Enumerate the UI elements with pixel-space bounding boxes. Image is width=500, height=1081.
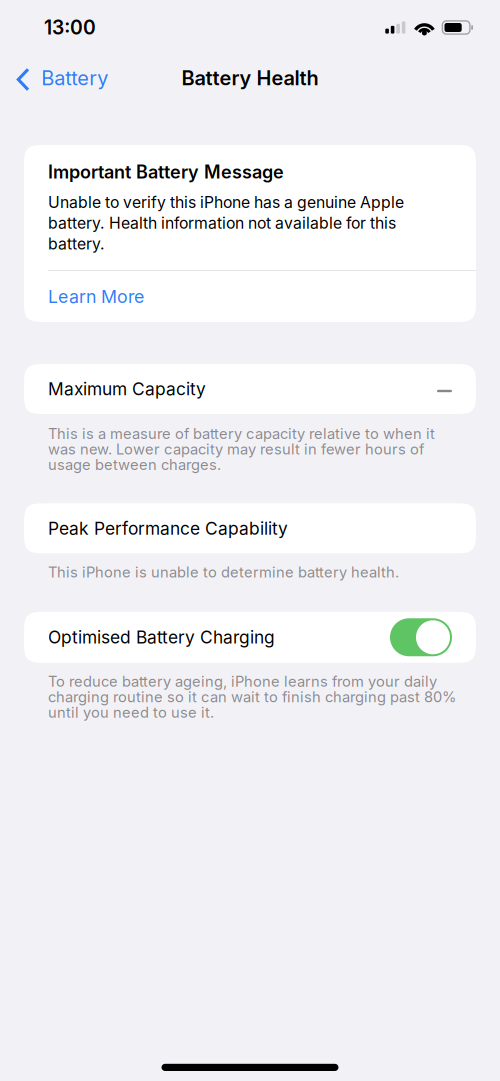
- button[interactable]: Optimised Battery Charging: [390, 618, 452, 656]
- button[interactable]: Battery: [0, 55, 120, 101]
- staticText: Maximum Capacity: [48, 378, 206, 399]
- staticText: Learn More: [48, 286, 144, 307]
- staticText: Unable to verify this iPhone has a genui…: [48, 192, 404, 254]
- button[interactable]: Peak Performance Capability: [0, 503, 500, 553]
- staticText: Important Battery Message: [48, 161, 284, 183]
- staticText: This iPhone is unable to determine batte…: [48, 564, 399, 580]
- staticText: Optimised Battery Charging: [48, 627, 275, 648]
- button[interactable]: Learn More: [24, 271, 476, 322]
- staticText: This is a measure of battery capacity re…: [48, 426, 435, 472]
- staticText: 13:00: [44, 16, 96, 39]
- staticText: Battery Health: [181, 66, 318, 90]
- staticText: Peak Performance Capability: [48, 518, 288, 539]
- button[interactable]: Maximum Capacity: [0, 364, 500, 414]
- staticText: Battery: [41, 66, 108, 90]
- staticText: To reduce battery ageing, iPhone learns …: [48, 674, 456, 720]
